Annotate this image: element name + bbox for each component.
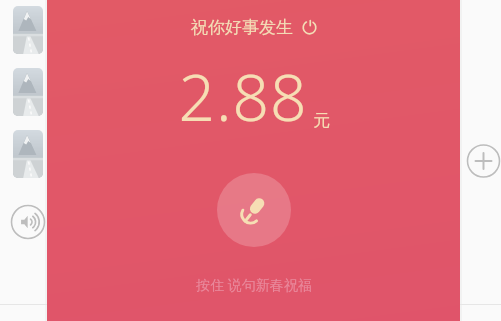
staticText: 元 <box>313 110 330 131</box>
button[interactable]: 按住说话 <box>217 173 291 247</box>
button[interactable]: 添加 <box>466 143 501 179</box>
staticText: 祝你好事发生 <box>191 17 293 38</box>
staticText: 按住 说句新春祝福 <box>196 275 312 294</box>
button[interactable] <box>13 68 43 116</box>
button[interactable]: 祝你好事发生 <box>183 14 325 41</box>
button[interactable] <box>13 6 43 54</box>
button[interactable] <box>13 130 43 178</box>
button[interactable]: 声音 <box>10 204 46 240</box>
staticText: 2.88 <box>178 53 308 140</box>
other: 换一个 <box>302 20 317 35</box>
